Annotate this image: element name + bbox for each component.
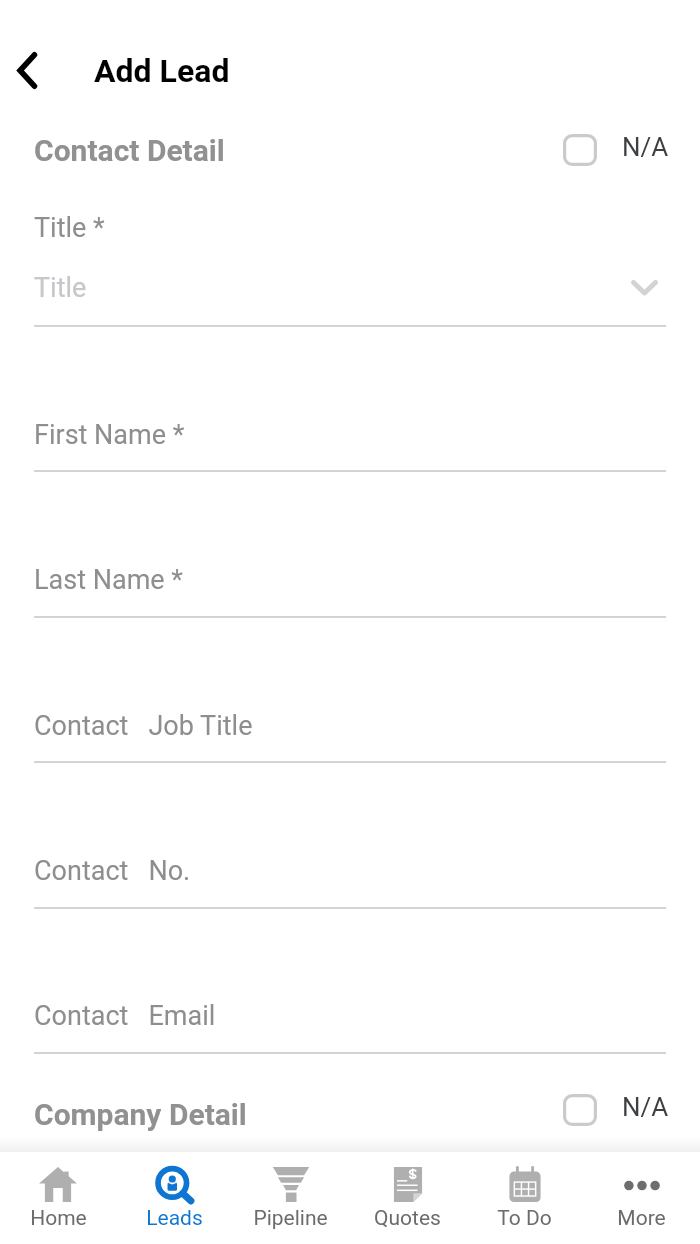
staticText: Home — [30, 1206, 87, 1231]
staticText: To Do — [497, 1206, 552, 1231]
staticText: Title — [34, 272, 87, 304]
staticText: Contact No. — [34, 855, 191, 887]
staticText: N/A — [622, 1092, 669, 1122]
staticText: Company Detail — [34, 1097, 247, 1132]
staticText: Contact Detail — [34, 133, 225, 168]
staticText: Last Name * — [34, 564, 183, 596]
staticText: Add Lead — [94, 52, 230, 90]
button[interactable]: Back — [0, 43, 58, 97]
staticText: Contact Email — [34, 1000, 216, 1032]
button[interactable] — [34, 379, 666, 471]
button[interactable]: To Do — [466, 1152, 583, 1244]
staticText: More — [617, 1206, 666, 1231]
button[interactable] — [34, 670, 666, 762]
button[interactable]: N/A — [563, 134, 669, 166]
button[interactable] — [34, 815, 666, 907]
button[interactable] — [34, 524, 666, 616]
staticText: Quotes — [374, 1206, 441, 1231]
staticText: Title * — [34, 212, 105, 244]
button[interactable]: More — [583, 1152, 700, 1244]
button[interactable]: Quotes — [349, 1152, 466, 1244]
button[interactable] — [34, 960, 666, 1052]
staticText: Pipeline — [253, 1206, 328, 1231]
staticText: First Name * — [34, 419, 185, 451]
staticText: Leads — [146, 1206, 203, 1231]
button[interactable]: Select title — [616, 263, 672, 313]
button[interactable]: Leads — [116, 1152, 232, 1244]
button[interactable]: N/A — [563, 1094, 669, 1126]
staticText: Contact Job Title — [34, 710, 253, 742]
button[interactable]: Home — [0, 1152, 116, 1244]
button[interactable]: Pipeline — [232, 1152, 349, 1244]
staticText: N/A — [622, 132, 669, 162]
